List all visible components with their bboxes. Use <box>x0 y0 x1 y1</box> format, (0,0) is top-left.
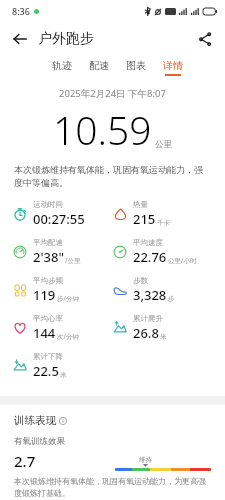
staticText: 2'38" <box>33 248 64 266</box>
staticText: 热量 <box>133 200 148 209</box>
staticText: 步数 <box>133 276 148 285</box>
button[interactable]: 平均步频 <box>12 276 112 304</box>
staticText: 米 <box>160 333 167 341</box>
staticText: 平均配速 <box>33 238 63 247</box>
button[interactable]: Share <box>191 25 219 53</box>
staticText: 8:36 <box>12 5 30 17</box>
button[interactable]: 平均速度 <box>112 238 213 266</box>
staticText: 户外跑步 <box>38 30 94 48</box>
staticText: 累计下降 <box>33 352 63 361</box>
staticText: 有氧训练效果 <box>14 436 65 447</box>
staticText: 2025年2月24日 下午8:07 <box>0 87 225 100</box>
staticText: 本次锻炼维持有氧体能，巩固有氧运动能力，为更高强度锻炼打基础。 <box>14 476 211 498</box>
staticText: 本次锻炼维持有氧体能，巩固有氧运动能力，强度中等偏高。 <box>14 164 211 189</box>
staticText: 次/分钟 <box>57 332 79 341</box>
staticText: 平均心率 <box>33 314 63 323</box>
staticText: 详情 <box>163 59 183 72</box>
button[interactable]: 平均心率 <box>12 314 112 342</box>
staticText: 10.59 <box>53 103 152 156</box>
staticText: 维持 <box>139 456 152 464</box>
staticText: 3,328 <box>133 286 167 304</box>
staticText: 00:27:55 <box>33 210 85 228</box>
staticText: 215 <box>133 210 156 228</box>
button[interactable]: 累计下降 <box>12 352 112 380</box>
staticText: 平均步频 <box>33 276 63 285</box>
button[interactable]: 详情 <box>161 59 185 76</box>
button[interactable]: 累计爬升 <box>112 314 213 342</box>
staticText: 26.8 <box>133 324 159 342</box>
staticText: 米 <box>60 371 67 379</box>
staticText: 配速 <box>89 59 109 72</box>
staticText: 公里/小时 <box>168 256 197 265</box>
staticText: 累计爬升 <box>133 314 163 323</box>
staticText: 训练表现 <box>14 414 56 427</box>
button[interactable]: 热量 <box>112 200 213 228</box>
staticText: 公里 <box>155 139 172 150</box>
button[interactable]: 平均配速 <box>12 238 112 266</box>
button[interactable]: 图表 <box>124 59 148 76</box>
button[interactable]: 配速 <box>87 59 111 76</box>
staticText: 平均速度 <box>133 238 163 247</box>
button[interactable]: 轨迹 <box>50 59 74 76</box>
staticText: 22.76 <box>133 248 167 266</box>
button[interactable]: Back <box>6 25 34 53</box>
staticText: 步/分钟 <box>57 294 79 303</box>
staticText: 144 <box>33 324 56 342</box>
other: Info <box>59 417 67 425</box>
staticText: 轨迹 <box>52 59 72 72</box>
staticText: 步 <box>168 295 175 303</box>
button[interactable]: 训练表现 <box>14 414 67 427</box>
staticText: 119 <box>33 286 56 304</box>
staticText: 22.5 <box>33 362 59 380</box>
staticText: 千卡 <box>157 219 170 227</box>
button[interactable]: 运动时间 <box>12 200 112 228</box>
button[interactable]: 步数 <box>112 276 213 304</box>
staticText: 2.7 <box>14 451 36 471</box>
staticText: 运动时间 <box>33 200 63 209</box>
staticText: /公里 <box>65 256 81 265</box>
staticText: 图表 <box>126 59 146 72</box>
